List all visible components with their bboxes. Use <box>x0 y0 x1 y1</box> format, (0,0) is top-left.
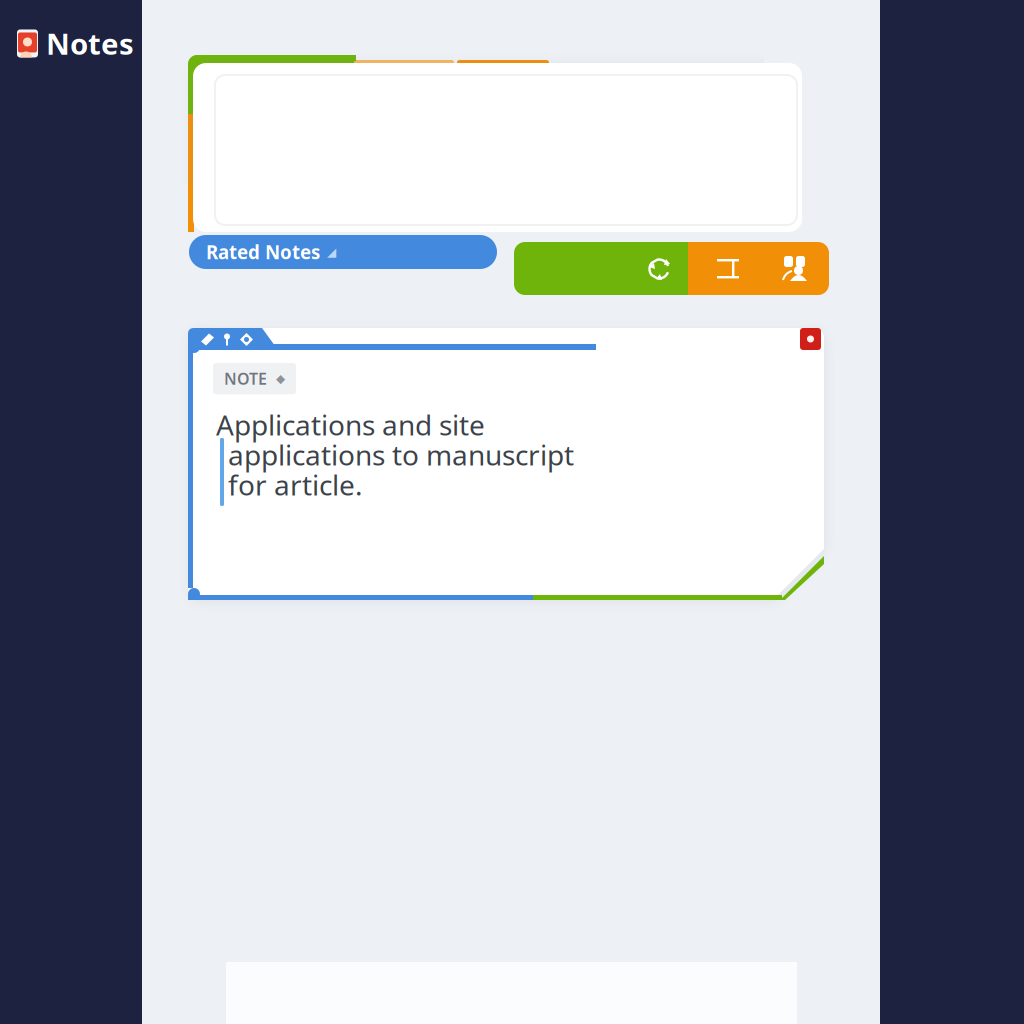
staticText: ◢ <box>327 245 336 259</box>
staticText: Rated Notes <box>206 240 320 264</box>
staticText: for article. <box>228 466 363 503</box>
staticText: applications to manuscript <box>228 436 574 473</box>
button[interactable]: Recycle bin <box>514 242 688 295</box>
staticText: Applications and site <box>216 406 485 443</box>
button[interactable]: Layout options <box>688 242 829 295</box>
button[interactable]: Rated Notes <box>189 235 497 269</box>
staticText: ◆ <box>276 372 285 385</box>
staticText: NOTE <box>224 368 267 389</box>
staticText: Notes <box>46 24 134 63</box>
